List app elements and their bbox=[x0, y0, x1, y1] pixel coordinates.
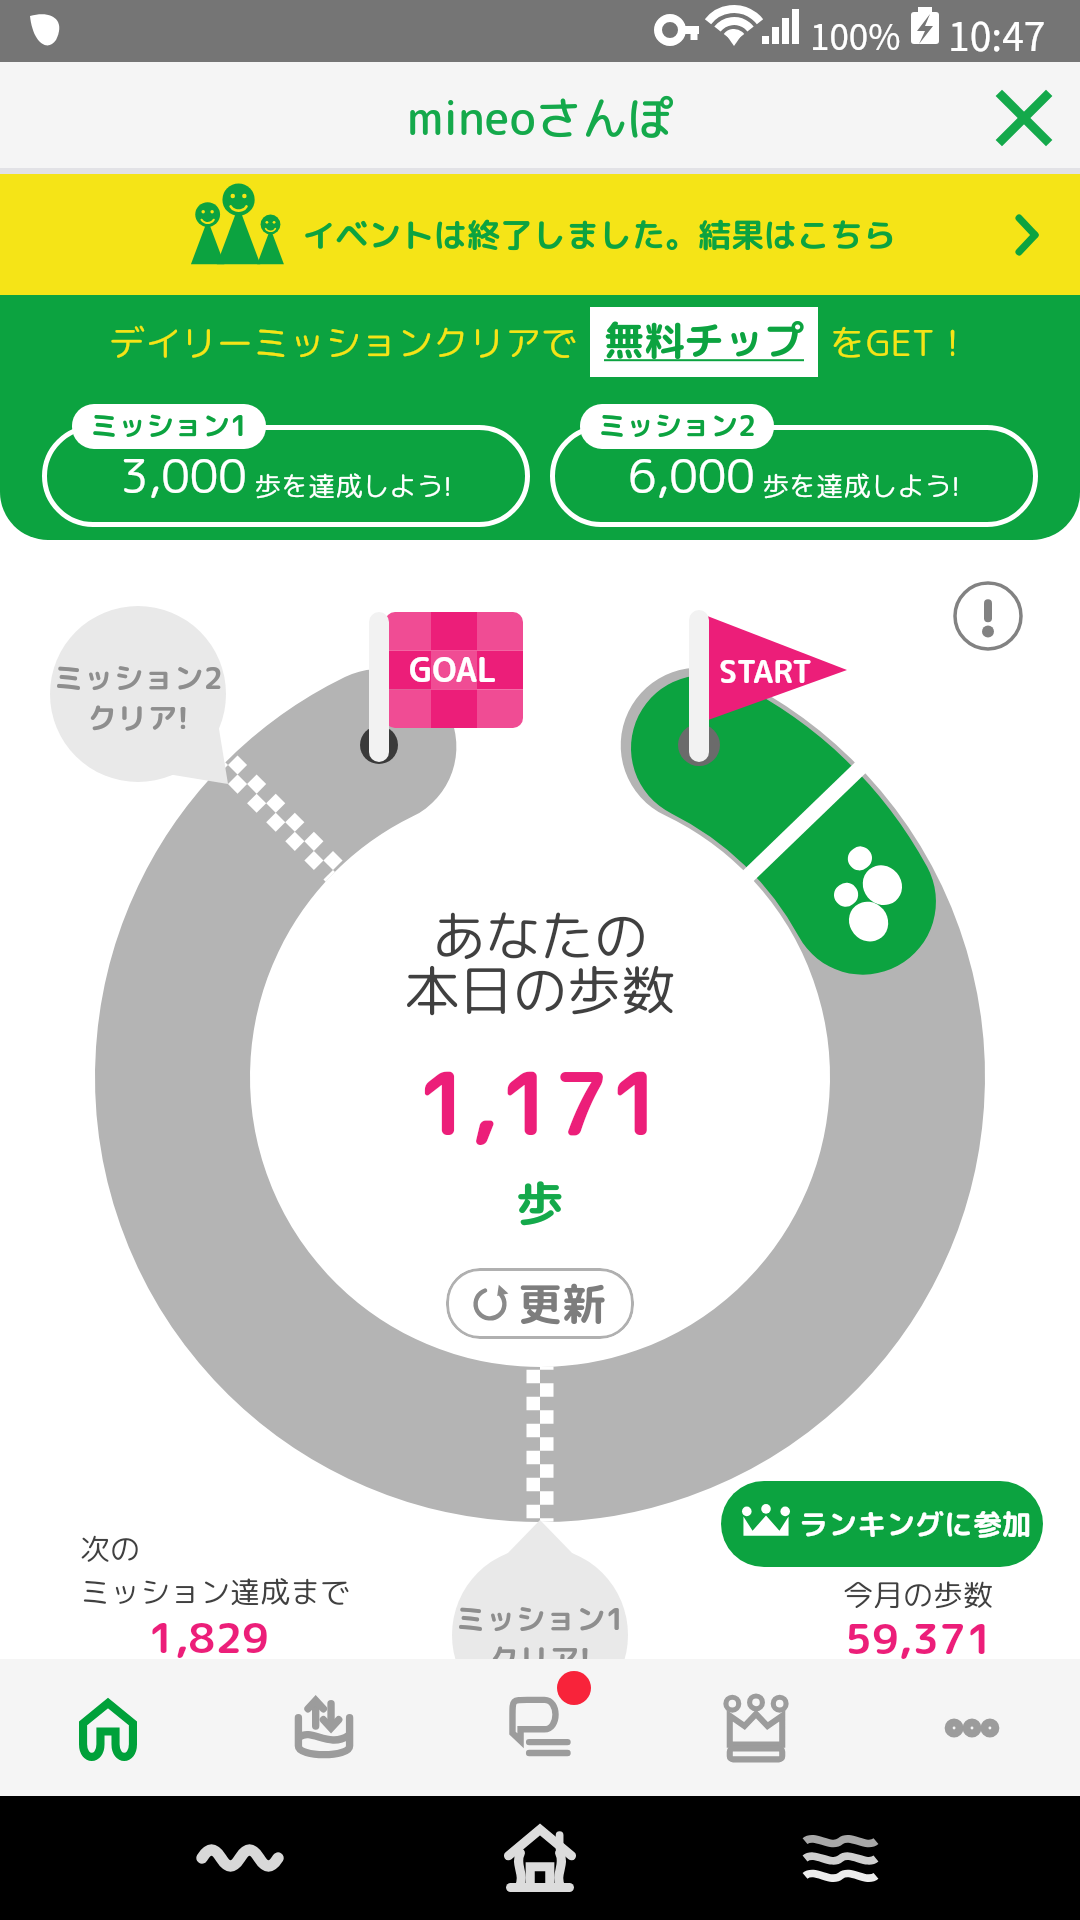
button[interactable]: Recents bbox=[780, 1798, 900, 1918]
staticText: あなたの 本日の歩数 bbox=[405, 898, 675, 1027]
staticText: 無料チップ bbox=[604, 312, 804, 368]
staticText: 歩を達成しよう! bbox=[247, 467, 452, 505]
staticText: ランキングに参加 bbox=[799, 1504, 1032, 1544]
staticText: 1,829 bbox=[148, 1608, 270, 1667]
staticText: ミッション2 クリア! bbox=[38, 657, 238, 739]
button[interactable]: Data transfer bbox=[216, 1659, 432, 1796]
button[interactable]: More bbox=[864, 1659, 1080, 1796]
button[interactable]: Close bbox=[968, 62, 1080, 174]
staticText: mineoさんぽ bbox=[407, 86, 674, 150]
button[interactable]: ランキングに参加 bbox=[721, 1481, 1043, 1567]
staticText: ミッション2 bbox=[598, 406, 756, 445]
staticText: をGET！ bbox=[830, 317, 971, 367]
button[interactable]: Information bbox=[950, 578, 1026, 654]
button[interactable]: 3,000 bbox=[42, 425, 530, 527]
staticText: イベントは終了しました。結果はこちら bbox=[302, 212, 896, 258]
button[interactable]: Back bbox=[180, 1798, 300, 1918]
staticText: 歩 bbox=[516, 1169, 565, 1236]
button[interactable]: Ranking bbox=[648, 1659, 864, 1796]
staticText: 59,371 bbox=[845, 1609, 993, 1668]
button[interactable]: Home bbox=[480, 1798, 600, 1918]
button[interactable]: Home bbox=[0, 1659, 216, 1796]
staticText: ミッション1 bbox=[90, 406, 248, 445]
button[interactable]: 6,000 bbox=[550, 425, 1038, 527]
staticText: 100% bbox=[810, 9, 901, 60]
staticText: デイリーミッションクリアで bbox=[109, 317, 578, 367]
staticText: 今月の歩数 bbox=[843, 1574, 993, 1616]
staticText: 3,000 bbox=[120, 444, 247, 508]
staticText: 6,000 bbox=[628, 444, 755, 508]
button[interactable]: 更新 bbox=[446, 1268, 634, 1339]
staticText: 1,171 bbox=[416, 1043, 664, 1163]
staticText: GOAL bbox=[409, 647, 497, 693]
staticText: ミッション1 クリア! bbox=[440, 1598, 640, 1680]
staticText: 10:47 bbox=[948, 6, 1046, 62]
staticText: START bbox=[719, 650, 812, 693]
button[interactable]: イベントは終了しました。結果はこちら bbox=[0, 174, 1080, 295]
staticText: 歩を達成しよう! bbox=[755, 467, 960, 505]
button[interactable]: Messages bbox=[432, 1659, 648, 1796]
staticText: 更新 bbox=[518, 1273, 606, 1334]
staticText: 次の ミッション達成まで bbox=[80, 1528, 350, 1612]
